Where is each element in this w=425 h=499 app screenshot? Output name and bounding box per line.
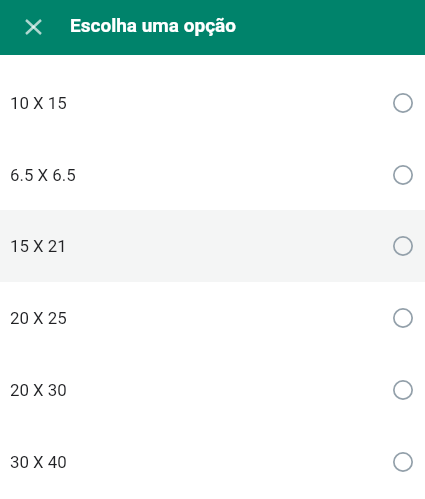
button[interactable]: 20 X 30 [0,354,425,426]
button[interactable]: Fechar [13,7,53,47]
button[interactable]: 6.5 X 6.5 [0,139,425,211]
staticText: Escolha uma opção [70,14,237,36]
button[interactable]: 10 X 15 [0,67,425,139]
button[interactable]: 20 X 25 [0,282,425,354]
staticText: 20 X 30 [10,380,67,400]
staticText: 15 X 21 [10,236,67,256]
staticText: 20 X 25 [10,308,67,328]
staticText: 30 X 40 [10,452,67,472]
staticText: 6.5 X 6.5 [10,165,76,185]
staticText: 10 X 15 [10,93,67,113]
button[interactable]: 15 X 21 [0,210,425,282]
button[interactable]: 30 X 40 [0,426,425,498]
